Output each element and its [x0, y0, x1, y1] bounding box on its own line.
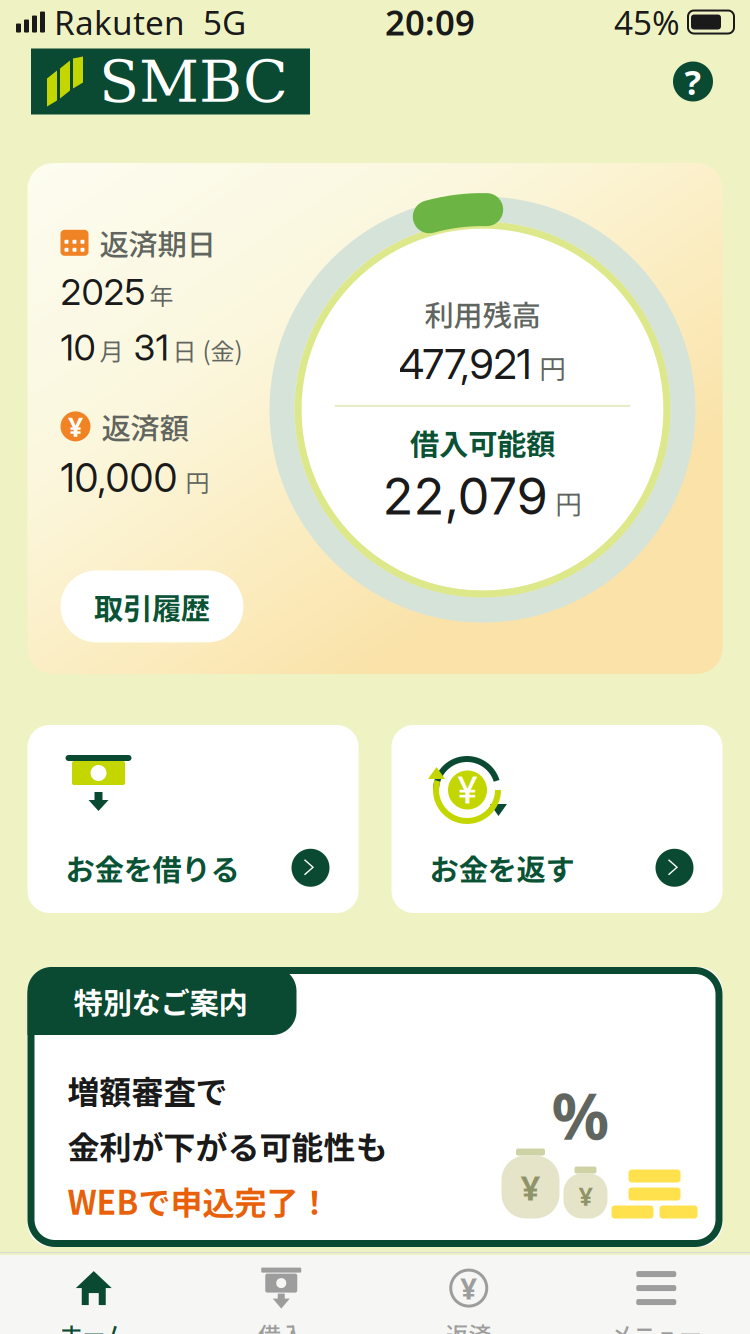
button[interactable]: メニュー	[562, 1267, 750, 1334]
staticText: メニュー	[610, 1317, 702, 1334]
staticText: 日	[172, 333, 196, 367]
staticText: 477,921	[398, 339, 531, 389]
button[interactable]: ¥	[375, 1267, 562, 1334]
staticText: 22,079	[382, 465, 547, 527]
staticText: ホーム	[60, 1317, 128, 1334]
staticText: 円	[539, 348, 566, 387]
staticText: %	[551, 1072, 609, 1157]
staticText: ?	[684, 58, 701, 104]
button[interactable]: お金を借りる	[27, 725, 358, 913]
staticText: SMBC	[99, 47, 288, 116]
button[interactable]: 取引履歴	[60, 570, 243, 642]
staticText: 月	[99, 333, 123, 367]
staticText: 10	[60, 326, 95, 369]
staticText: 特別なご案内	[73, 980, 247, 1022]
staticText: 円	[185, 464, 209, 499]
button[interactable]: ホーム	[0, 1267, 187, 1334]
button[interactable]: ヘルプ	[673, 61, 713, 101]
staticText: 増額審査で	[67, 1067, 227, 1113]
staticText: 取引履歴	[94, 585, 210, 628]
staticText: ¥	[457, 767, 477, 813]
staticText: ¥	[578, 1179, 592, 1213]
button[interactable]: ¥	[391, 725, 722, 913]
staticText: 円	[555, 484, 582, 522]
staticText: 10,000	[60, 455, 177, 501]
staticText: ¥	[68, 409, 83, 444]
staticText: Rakuten 5G	[45, 0, 246, 44]
staticText: WEBで申込完了！	[67, 1178, 330, 1224]
staticText: 金利が下がる可能性も	[67, 1122, 387, 1169]
button[interactable]: 特別なご案内	[27, 967, 722, 1247]
staticText: 45%	[614, 0, 680, 44]
staticText: 借入	[258, 1317, 304, 1334]
staticText: 2025	[60, 270, 145, 314]
staticText: ¥	[520, 1164, 540, 1210]
staticText: お金を返す	[429, 846, 574, 889]
staticText: 返済期日	[99, 222, 215, 264]
staticText: ¥	[460, 1269, 477, 1308]
staticText: 31	[133, 326, 168, 369]
staticText: 利用残高	[424, 292, 540, 335]
staticText: 借入可能額	[410, 421, 555, 463]
staticText: (金)	[202, 333, 242, 367]
staticText: 返済	[446, 1317, 492, 1334]
button[interactable]: 借入	[187, 1267, 375, 1334]
staticText: 20:09	[385, 0, 475, 45]
staticText: 返済額	[101, 405, 188, 448]
staticText: お金を借りる	[65, 846, 239, 889]
staticText: 年	[149, 277, 173, 312]
